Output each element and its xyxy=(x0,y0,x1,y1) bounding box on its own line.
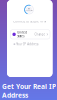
staticText: No xyxy=(28,8,30,10)
staticText: Change xyxy=(34,33,45,36)
staticText: Get Your Real IP xyxy=(2,82,56,91)
staticText: United States xyxy=(17,31,27,38)
staticText: Your IP Address xyxy=(16,42,38,46)
button[interactable]: United States xyxy=(10,30,50,39)
staticText: connection xyxy=(25,10,33,11)
staticText: Address xyxy=(2,91,28,100)
staticText: Connect to secure VPN xyxy=(13,20,46,23)
